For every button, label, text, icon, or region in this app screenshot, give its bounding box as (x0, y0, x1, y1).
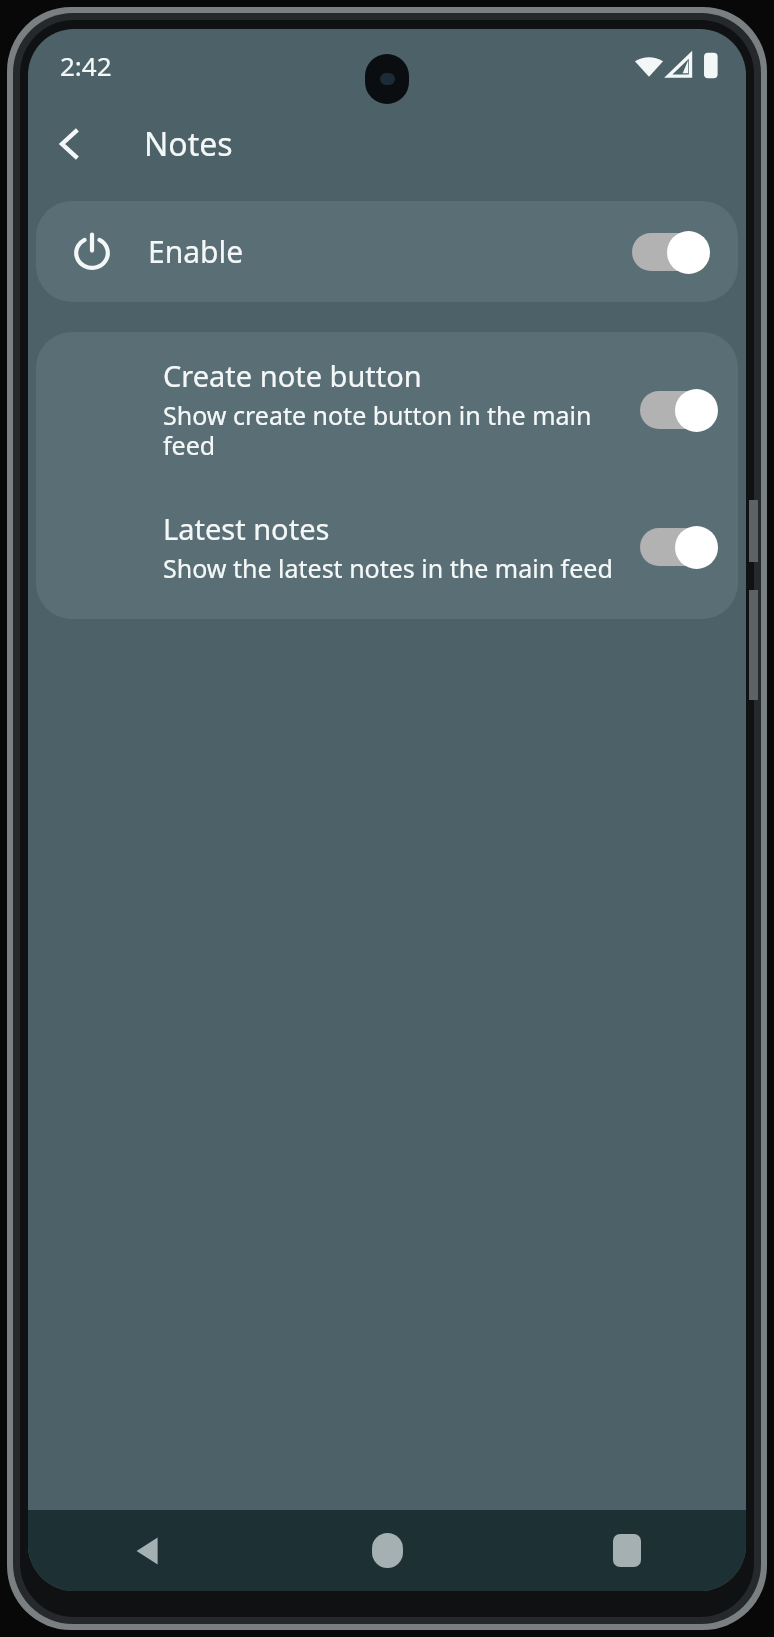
staticText: 2:42 (60, 48, 112, 83)
button[interactable]: Back (40, 113, 102, 175)
staticText: Notes (144, 122, 233, 166)
button[interactable]: Toggle (640, 386, 718, 434)
button[interactable]: Back (28, 1510, 268, 1591)
button[interactable]: Recent apps (507, 1510, 746, 1591)
button[interactable]: Toggle (640, 523, 718, 571)
staticText: Show create note button in the main feed (163, 398, 626, 463)
staticText: Show the latest notes in the main feed (163, 551, 613, 585)
button[interactable]: Home (268, 1510, 507, 1591)
button[interactable]: Toggle (632, 228, 710, 276)
button[interactable]: Create note button (36, 350, 738, 469)
button[interactable]: Latest notes (36, 503, 738, 591)
staticText: Enable (148, 231, 244, 272)
staticText: Latest notes (163, 509, 330, 548)
button[interactable]: Enable (36, 201, 738, 302)
staticText: Create note button (163, 356, 422, 395)
